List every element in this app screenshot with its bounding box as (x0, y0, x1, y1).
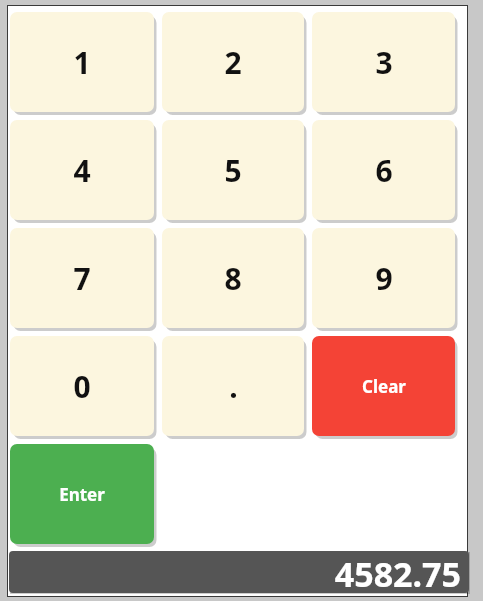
staticText: Clear (362, 375, 406, 398)
button[interactable]: 7 (10, 228, 154, 328)
staticText: . (229, 366, 238, 407)
staticText: 2 (224, 42, 242, 83)
button[interactable]: 2 (162, 12, 304, 112)
button[interactable]: 3 (312, 12, 455, 112)
staticText: 6 (375, 150, 393, 191)
button[interactable]: Clear (312, 336, 455, 436)
button[interactable]: 9 (312, 228, 455, 328)
staticText: 5 (224, 150, 242, 191)
button[interactable]: 8 (162, 228, 304, 328)
button[interactable]: 0 (10, 336, 154, 436)
staticText: 4582.75 (334, 551, 461, 593)
staticText: 4 (73, 150, 91, 191)
button[interactable]: Enter (10, 444, 154, 544)
button[interactable]: Amount display (9, 551, 469, 593)
staticText: Enter (59, 483, 105, 506)
button[interactable]: 6 (312, 120, 455, 220)
button[interactable]: 5 (162, 120, 304, 220)
staticText: 3 (375, 42, 393, 83)
staticText: 7 (73, 258, 91, 299)
staticText: 1 (73, 42, 91, 83)
button[interactable]: 1 (10, 12, 154, 112)
staticText: 9 (375, 258, 393, 299)
button[interactable]: 4 (10, 120, 154, 220)
button[interactable]: . (162, 336, 304, 436)
staticText: 8 (224, 258, 242, 299)
staticText: 0 (73, 366, 91, 407)
